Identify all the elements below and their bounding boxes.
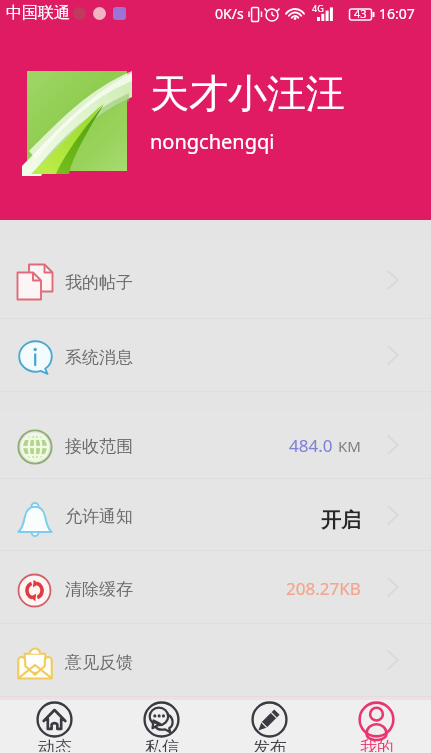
staticText: 天才小汪汪	[150, 69, 345, 118]
other: 私信	[143, 701, 180, 738]
staticText: 484.0	[289, 434, 333, 457]
button[interactable]: 清除缓存	[0, 551, 431, 623]
other: 发布	[251, 701, 288, 738]
button[interactable]: 我的帖子	[0, 242, 431, 318]
button[interactable]: 系统消息	[0, 319, 431, 391]
button[interactable]: 发布	[216, 700, 323, 753]
staticText: 开启	[321, 508, 361, 533]
staticText: 43	[354, 6, 367, 21]
staticText: 系统消息	[65, 347, 133, 368]
other: 我的	[358, 701, 395, 738]
staticText: 0K/s	[215, 4, 244, 23]
staticText: 我的	[360, 737, 394, 752]
staticText: 发布	[253, 737, 287, 752]
staticText: 私信	[145, 737, 179, 752]
staticText: nongchengqi	[150, 128, 275, 155]
button[interactable]: 意见反馈	[0, 624, 431, 696]
button[interactable]: 动态	[1, 700, 108, 753]
staticText: 动态	[38, 737, 72, 752]
staticText: 208.27KB	[286, 577, 361, 600]
button[interactable]: 我的	[323, 700, 430, 753]
staticText: 16:07	[379, 4, 415, 23]
staticText: 我的帖子	[65, 272, 133, 293]
staticText: 意见反馈	[65, 652, 133, 673]
button[interactable]: 接收范围	[0, 411, 431, 478]
staticText: 4G	[312, 2, 324, 14]
staticText: 接收范围	[65, 436, 133, 457]
button[interactable]: 私信	[108, 700, 215, 753]
staticText: 清除缓存	[65, 579, 133, 600]
staticText: KM	[338, 436, 361, 456]
button[interactable]: 允许通知	[0, 479, 431, 550]
staticText: 中国联通	[6, 3, 70, 23]
staticText: 允许通知	[65, 506, 133, 527]
other: 动态	[36, 701, 73, 738]
